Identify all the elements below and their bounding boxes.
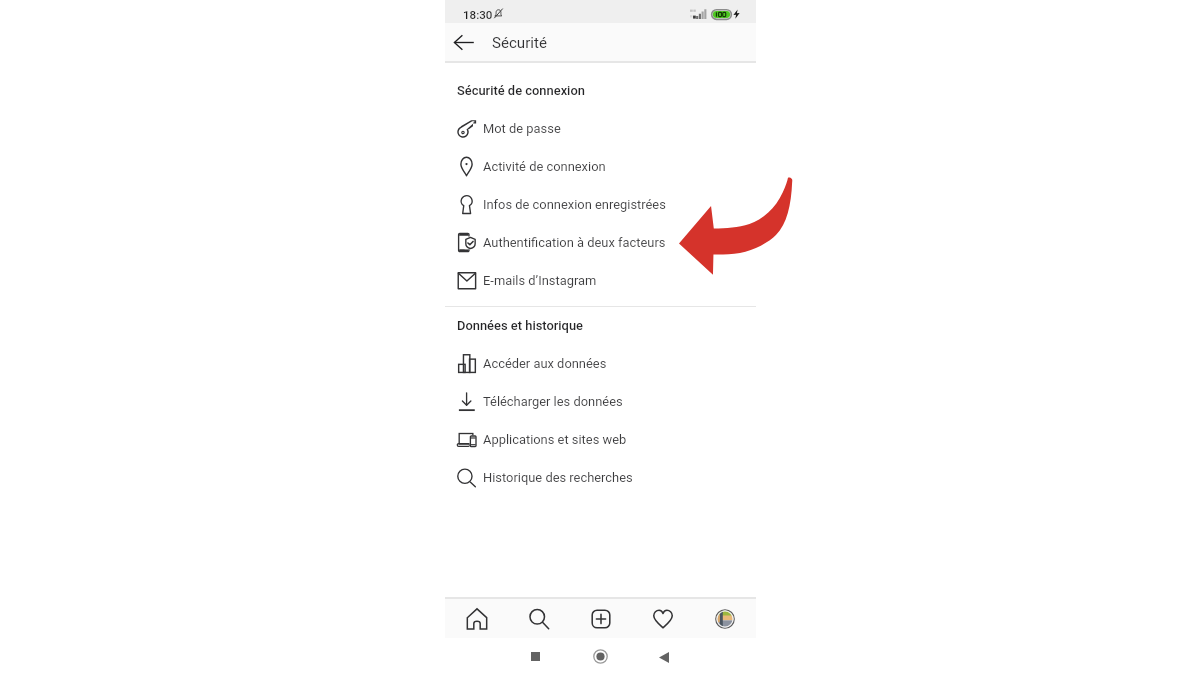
button[interactable]: Mot de passe: [445, 109, 756, 147]
staticText: Sécurité: [492, 34, 547, 52]
button[interactable]: Accéder aux données: [445, 344, 756, 382]
button[interactable]: Notifications: [632, 599, 694, 638]
button[interactable]: Authentification à deux facteurs: [445, 223, 756, 261]
staticText: Infos de connexion enregistrées: [483, 197, 666, 212]
staticText: Mot de passe: [483, 121, 561, 136]
staticText: Sécurité de connexion: [457, 83, 585, 98]
button[interactable]: Accueil: [445, 599, 508, 638]
staticText: Historique des recherches: [483, 470, 633, 485]
button[interactable]: Télécharger les données: [445, 382, 756, 420]
button[interactable]: Rechercher: [508, 599, 570, 638]
staticText: E-mails d’Instagram: [483, 273, 597, 288]
button[interactable]: E-mails d’Instagram: [445, 261, 756, 299]
other: Barre de navigation système: [445, 638, 756, 675]
staticText: Accéder aux données: [483, 356, 607, 371]
button[interactable]: Retour: [659, 652, 669, 663]
button[interactable]: Profil: [694, 599, 756, 638]
staticText: Télécharger les données: [483, 394, 623, 409]
button[interactable]: Applications et sites web: [445, 420, 756, 458]
staticText: Données et historique: [457, 318, 584, 333]
button[interactable]: Activité de connexion: [445, 147, 756, 185]
staticText: Activité de connexion: [483, 159, 606, 174]
staticText: Applications et sites web: [483, 432, 627, 447]
button[interactable]: Accueil: [593, 649, 608, 664]
button[interactable]: Infos de connexion enregistrées: [445, 185, 756, 223]
staticText: 18:30: [463, 8, 493, 22]
button[interactable]: Historique des recherches: [445, 458, 756, 496]
button[interactable]: Créer: [570, 599, 632, 638]
button[interactable]: Retour: [449, 27, 479, 57]
staticText: Authentification à deux facteurs: [483, 235, 666, 250]
